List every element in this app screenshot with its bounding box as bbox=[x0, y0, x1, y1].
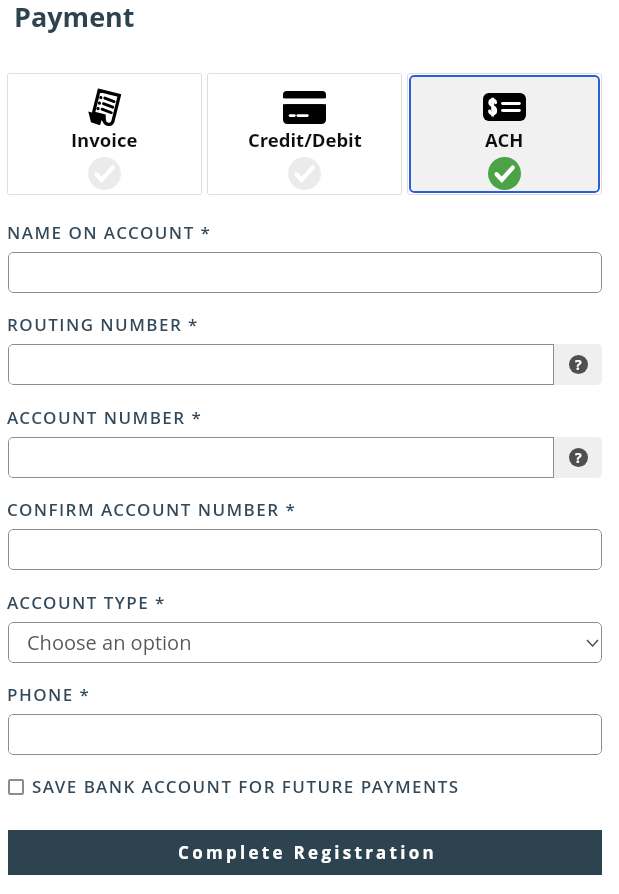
button[interactable]: Complete Registration bbox=[8, 830, 602, 875]
staticText: ACCOUNT TYPE * bbox=[7, 591, 166, 614]
button[interactable] bbox=[8, 529, 602, 570]
staticText: ? bbox=[575, 448, 582, 467]
staticText: Complete Registration bbox=[178, 841, 437, 864]
staticText: Credit/Debit bbox=[248, 127, 362, 152]
staticText: SAVE BANK ACCOUNT FOR FUTURE PAYMENTS bbox=[32, 775, 460, 798]
button[interactable]: Choose an option bbox=[8, 622, 602, 663]
button[interactable]: SAVE BANK ACCOUNT FOR FUTURE PAYMENTS bbox=[8, 775, 619, 798]
button[interactable]: ACH bbox=[409, 75, 600, 193]
button[interactable]: Credit/Debit bbox=[207, 73, 402, 195]
button[interactable] bbox=[8, 437, 554, 478]
button[interactable]: Invoice bbox=[7, 73, 202, 195]
button[interactable] bbox=[8, 344, 554, 385]
staticText: ACH bbox=[485, 127, 524, 152]
staticText: Invoice bbox=[71, 127, 138, 152]
staticText: NAME ON ACCOUNT * bbox=[7, 221, 212, 244]
button[interactable] bbox=[8, 252, 602, 293]
button[interactable]: Help bbox=[554, 437, 602, 478]
staticText: Choose an option bbox=[27, 629, 192, 656]
button[interactable]: Help bbox=[554, 344, 602, 385]
staticText: ROUTING NUMBER * bbox=[7, 313, 199, 336]
button[interactable] bbox=[8, 714, 602, 755]
staticText: ACCOUNT NUMBER * bbox=[7, 406, 203, 429]
staticText: ? bbox=[575, 355, 582, 374]
staticText: Payment bbox=[14, 0, 135, 35]
staticText: CONFIRM ACCOUNT NUMBER * bbox=[7, 498, 297, 521]
staticText: PHONE * bbox=[7, 683, 91, 706]
